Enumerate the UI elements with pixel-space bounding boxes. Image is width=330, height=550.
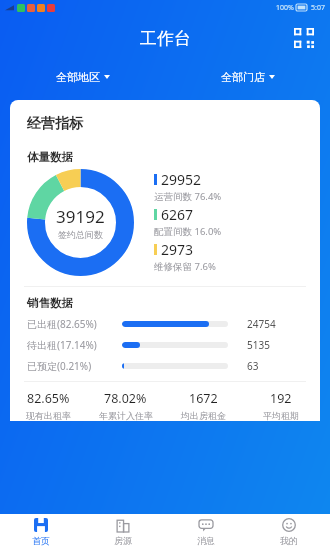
button[interactable]: 首页 bbox=[0, 514, 82, 550]
staticText: 已出租(82.65%) bbox=[27, 317, 97, 331]
staticText: 1672 bbox=[189, 390, 218, 407]
staticText: 2973 bbox=[161, 240, 194, 259]
button[interactable]: 待出租(17.14%) bbox=[10, 334, 320, 355]
button[interactable]: 已出租(82.65%) bbox=[10, 313, 320, 334]
staticText: 100% bbox=[276, 3, 294, 13]
button[interactable]: 78.02% bbox=[87, 390, 164, 421]
staticText: 24754 bbox=[247, 317, 276, 331]
staticText: 29952 bbox=[161, 170, 202, 189]
staticText: 全部地区 bbox=[56, 70, 100, 84]
staticText: 平均租期 bbox=[263, 410, 299, 421]
staticText: 销售数据 bbox=[27, 296, 73, 310]
staticText: 维修保留 7.6% bbox=[154, 260, 216, 273]
staticText: 63 bbox=[247, 359, 259, 373]
staticText: 签约总间数 bbox=[58, 229, 103, 240]
button[interactable]: 我的 bbox=[247, 514, 330, 550]
staticText: 经营指标 bbox=[27, 115, 83, 133]
button[interactable]: 全部门店 bbox=[165, 61, 330, 93]
button[interactable]: 1672 bbox=[164, 390, 242, 421]
button[interactable]: 82.65% bbox=[10, 390, 87, 421]
staticText: 均出房租金 bbox=[181, 410, 226, 421]
staticText: 全部门店 bbox=[221, 70, 265, 84]
button[interactable]: 房源 bbox=[82, 514, 164, 550]
staticText: 工作台 bbox=[140, 28, 191, 49]
staticText: 年累计入住率 bbox=[99, 410, 153, 421]
staticText: 39192 bbox=[56, 205, 105, 228]
staticText: 待出租(17.14%) bbox=[27, 338, 97, 352]
staticText: 运营间数 76.4% bbox=[154, 190, 222, 203]
staticText: 体量数据 bbox=[27, 150, 73, 164]
staticText: 我的 bbox=[280, 535, 298, 546]
staticText: 192 bbox=[270, 390, 292, 407]
staticText: 6267 bbox=[161, 205, 194, 224]
staticText: 房源 bbox=[114, 535, 132, 546]
button[interactable]: 已预定(0.21%) bbox=[10, 355, 320, 376]
staticText: 首页 bbox=[32, 535, 50, 546]
staticText: 5135 bbox=[247, 338, 270, 352]
staticText: 现有出租率 bbox=[26, 410, 71, 421]
button[interactable]: 消息 bbox=[164, 514, 247, 550]
staticText: 82.65% bbox=[27, 390, 70, 407]
button[interactable]: Scan QR code bbox=[289, 23, 319, 53]
button[interactable]: 192 bbox=[242, 390, 320, 421]
staticText: 5:07 bbox=[311, 3, 325, 13]
button[interactable]: 全部地区 bbox=[0, 61, 165, 93]
staticText: 78.02% bbox=[104, 390, 147, 407]
staticText: 配置间数 16.0% bbox=[154, 225, 222, 238]
staticText: 已预定(0.21%) bbox=[27, 359, 92, 373]
staticText: 消息 bbox=[197, 535, 215, 546]
